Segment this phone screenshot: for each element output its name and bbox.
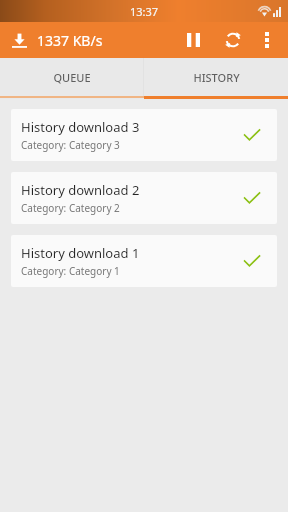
button[interactable]: History download 3 xyxy=(11,109,277,161)
staticText: Category: Category 2 xyxy=(21,201,120,215)
button[interactable]: More options xyxy=(252,25,282,55)
staticText: History download 2 xyxy=(21,181,140,199)
button[interactable]: QUEUE xyxy=(0,58,143,96)
other: Completed xyxy=(241,124,263,146)
button[interactable]: History download 1 xyxy=(11,235,277,287)
button[interactable]: HISTORY xyxy=(144,58,288,96)
other: Completed xyxy=(241,187,263,209)
other: Completed xyxy=(241,250,263,272)
staticText: HISTORY xyxy=(193,70,240,85)
staticText: Category: Category 3 xyxy=(21,138,120,152)
staticText: Category: Category 1 xyxy=(21,264,120,278)
staticText: History download 3 xyxy=(21,118,140,136)
button[interactable]: Pause xyxy=(176,23,210,57)
staticText: History download 1 xyxy=(21,244,140,262)
button[interactable]: Refresh xyxy=(216,23,250,57)
staticText: 13:37 xyxy=(130,4,159,19)
button[interactable]: 1337 KB/s xyxy=(10,27,105,54)
staticText: QUEUE xyxy=(53,70,91,85)
staticText: 1337 KB/s xyxy=(37,31,103,50)
button[interactable]: History download 2 xyxy=(11,172,277,224)
